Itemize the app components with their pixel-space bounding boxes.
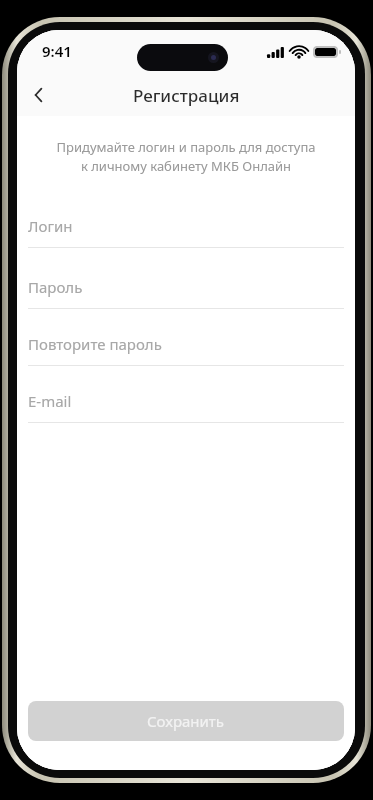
staticText: Пароль	[28, 277, 83, 297]
button[interactable]: Логин	[28, 213, 344, 248]
button[interactable]: E-mail	[28, 388, 344, 423]
staticText: Регистрация	[133, 84, 240, 107]
staticText: Логин	[28, 216, 73, 236]
staticText: Повторите пароль	[28, 334, 162, 354]
staticText: Сохранить	[147, 711, 225, 731]
staticText: E-mail	[28, 391, 72, 411]
staticText: Придумайте логин и пароль для доступа к …	[37, 138, 335, 175]
button[interactable]: Пароль	[28, 274, 344, 309]
button[interactable]: Назад	[17, 74, 61, 116]
staticText: 9:41	[42, 41, 72, 61]
button[interactable]: Сохранить	[28, 701, 344, 741]
button[interactable]: Повторите пароль	[28, 331, 344, 366]
